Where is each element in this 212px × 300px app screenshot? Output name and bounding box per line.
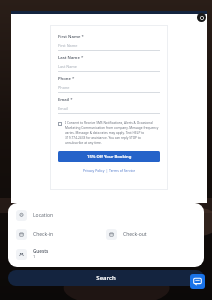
staticText: First Name	[58, 43, 78, 48]
button[interactable]: Privacy Policy	[83, 168, 105, 173]
button[interactable]: SMS consent checkbox	[58, 121, 160, 145]
staticText: Check-out	[123, 231, 147, 238]
staticText: Email	[58, 106, 68, 111]
button[interactable]: Email	[58, 106, 160, 114]
staticText: Check-in	[33, 231, 54, 238]
staticText: Email *	[58, 97, 73, 103]
button[interactable]: Last Name	[58, 64, 160, 72]
button[interactable]: Check-out	[106, 229, 196, 240]
button[interactable]: Location	[16, 210, 196, 221]
staticText: Last Name	[58, 64, 78, 69]
button[interactable]: Guests	[16, 248, 196, 260]
staticText: First Name *	[58, 34, 84, 40]
button[interactable]: 15% Off Your Booking	[58, 151, 160, 162]
button[interactable]: Search	[8, 270, 204, 286]
staticText: 1	[33, 254, 36, 260]
staticText: Phone	[58, 85, 70, 90]
staticText: Phone *	[58, 76, 75, 82]
other: SMS consent checkbox	[58, 122, 62, 126]
button[interactable]: First Name	[58, 43, 160, 51]
button[interactable]: Close	[197, 13, 206, 22]
staticText: 15% Off Your Booking	[87, 154, 132, 160]
button[interactable]: Chat	[190, 274, 205, 289]
staticText: Guests	[33, 248, 49, 254]
button[interactable]: Check-in	[16, 229, 106, 240]
staticText: Search	[96, 274, 116, 282]
staticText: Location	[33, 212, 54, 219]
staticText: Last Name *	[58, 55, 84, 61]
button[interactable]: Phone	[58, 85, 160, 93]
staticText: |	[105, 168, 109, 173]
staticText: I Consent to Receive SMS Notifications, …	[65, 121, 160, 145]
button[interactable]: Terms of Service	[109, 168, 136, 173]
